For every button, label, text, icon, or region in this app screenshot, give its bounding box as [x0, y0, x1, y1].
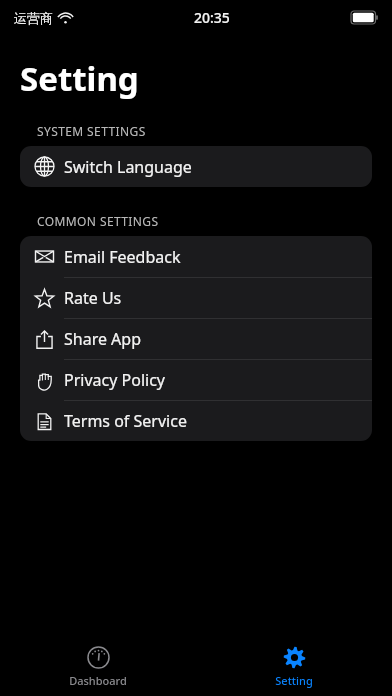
staticText: Rate Us	[64, 287, 122, 309]
staticText: Dashboard	[69, 673, 127, 688]
staticText: Setting	[20, 56, 139, 101]
button[interactable]: Setting	[196, 634, 392, 696]
staticText: SYSTEM SETTINGS	[37, 123, 146, 139]
button[interactable]: Share App	[20, 319, 372, 359]
button[interactable]: Switch Language	[20, 146, 372, 187]
button[interactable]: Rate Us	[20, 278, 372, 318]
staticText: Privacy Policy	[64, 369, 165, 391]
staticText: Switch Language	[64, 156, 192, 178]
staticText: Email Feedback	[64, 246, 181, 268]
button[interactable]: Dashboard	[0, 634, 196, 696]
staticText: 运营商	[14, 10, 53, 26]
staticText: COMMON SETTINGS	[37, 213, 159, 229]
button[interactable]: Privacy Policy	[20, 360, 372, 400]
staticText: Share App	[64, 328, 142, 350]
button[interactable]: Email Feedback	[20, 236, 372, 277]
staticText: Terms of Service	[64, 410, 187, 432]
staticText: 20:35	[194, 8, 230, 27]
button[interactable]: Terms of Service	[20, 401, 372, 441]
staticText: Setting	[275, 673, 313, 688]
